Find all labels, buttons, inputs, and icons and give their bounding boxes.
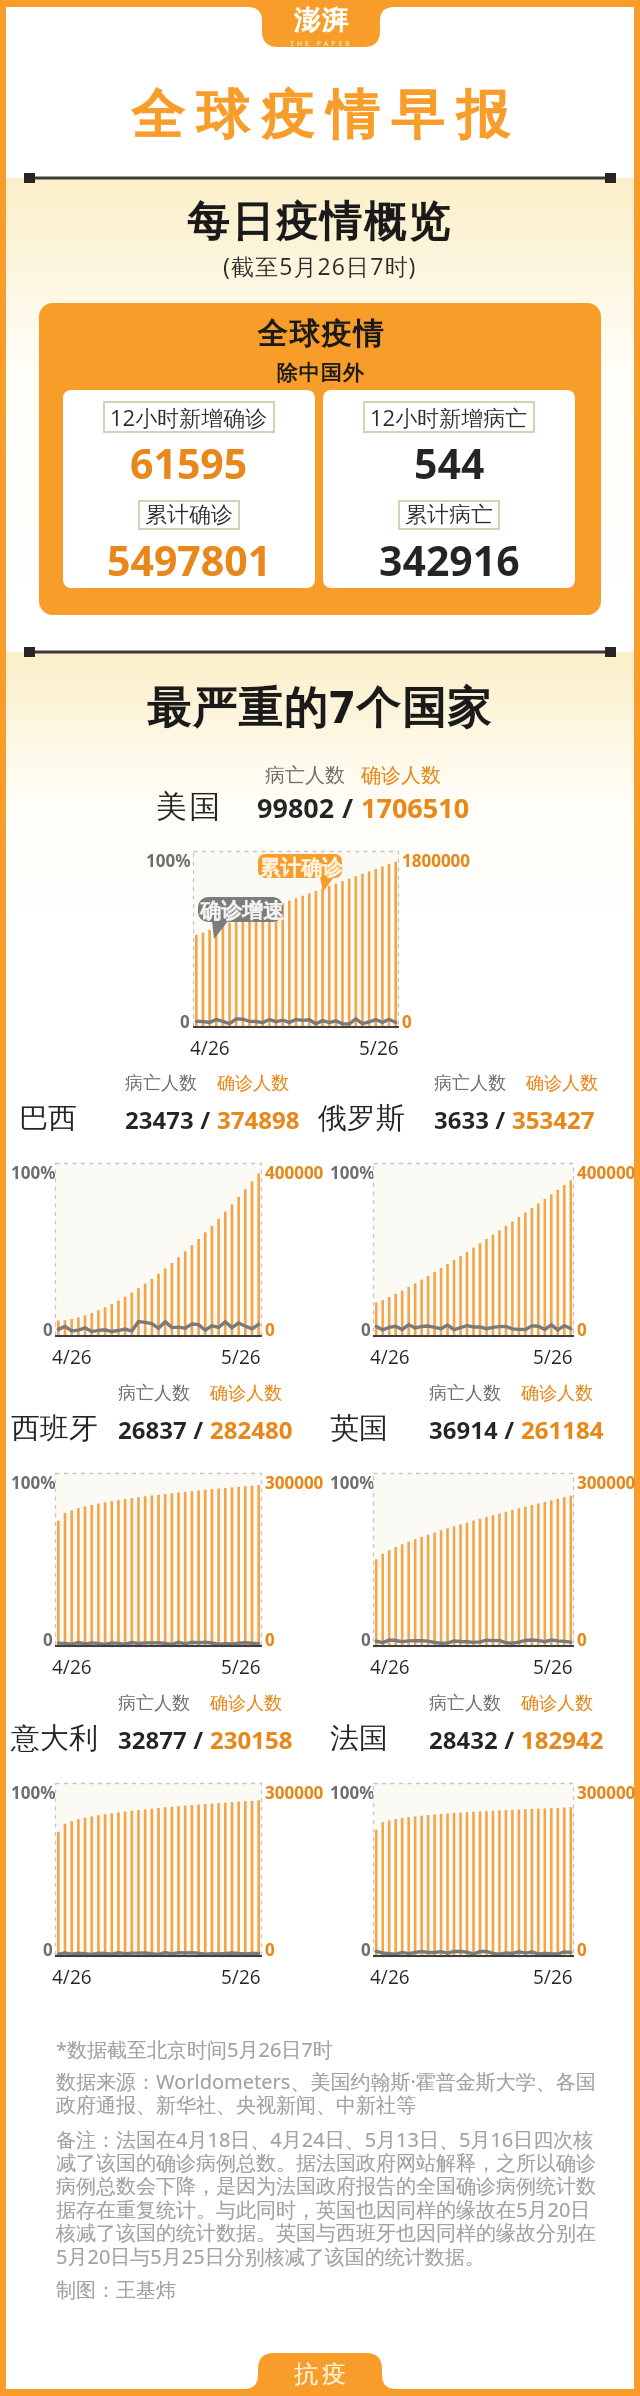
staticText: THE PAPER [290,39,353,49]
staticText: 1706510 [361,789,470,826]
staticText: 1800000 [402,849,471,872]
staticText: 374898 [217,1103,300,1136]
staticText: 100% [146,849,191,872]
staticText: 12小时新增确诊 [110,402,268,432]
button[interactable]: 12小时新增病亡 [323,390,575,588]
staticText: 病亡人数 [429,1692,501,1715]
staticText: / [498,1413,521,1446]
staticText: 4/26 [370,1344,410,1370]
staticText: 制图：王基炜 [56,2278,176,2303]
staticText: 俄罗斯 [318,1100,405,1137]
staticText: 意大利 [11,1720,98,1757]
staticText: 法国 [330,1720,388,1757]
staticText: 300000 [265,1781,324,1804]
staticText: 5/26 [533,1964,573,1990]
staticText: 300000 [265,1471,324,1494]
staticText: 全球疫情早报 [125,82,515,144]
staticText: 3633 [434,1103,489,1136]
staticText: 99802 [257,789,335,826]
staticText: 5497801 [107,532,272,588]
staticText: 0 [361,1938,371,1961]
staticText: 0 [361,1628,371,1651]
staticText: 4/26 [370,1654,410,1680]
staticText: 确诊增速 [200,898,284,924]
staticText: 美国 [155,787,221,826]
staticText: 282480 [210,1413,293,1446]
staticText: 400000 [265,1161,324,1184]
staticText: 100% [11,1781,56,1804]
button[interactable]: 12小时新增确诊 [63,390,315,588]
staticText: 巴西 [19,1100,77,1137]
staticText: 确诊人数 [217,1072,289,1095]
staticText: 0 [361,1318,371,1341]
staticText: 病亡人数 [429,1382,501,1405]
staticText: 确诊人数 [361,763,441,788]
staticText: 5/26 [533,1344,573,1370]
button[interactable]: 抗疫 [0,2346,640,2396]
staticText: 5/26 [533,1654,573,1680]
staticText: 5/26 [359,1035,399,1061]
staticText: 0 [265,1938,275,1961]
staticText: 每日疫情概览 [187,196,453,249]
staticText: 36914 [429,1413,498,1446]
staticText: 4/26 [52,1344,92,1370]
staticText: 353427 [512,1103,595,1136]
staticText: 全球疫情 [256,315,384,353]
staticText: 数据来源：Worldometers、美国约翰斯·霍普金斯大学、各国政府通报、新华… [56,2068,596,2118]
staticText: 26837 [118,1413,187,1446]
staticText: 230158 [210,1723,293,1756]
staticText: 病亡人数 [118,1382,190,1405]
staticText: 0 [43,1318,53,1341]
staticText: 342916 [379,532,520,588]
staticText: 最严重的7个国家 [147,676,493,736]
staticText: 澎湃 [293,4,349,37]
button[interactable]: 全球疫情 [39,303,601,615]
staticText: 确诊人数 [521,1692,593,1715]
staticText: 100% [11,1161,56,1184]
button[interactable]: The Paper logo [0,0,640,50]
staticText: 除中国外 [276,360,364,386]
staticText: 0 [402,1010,412,1033]
staticText: 4/26 [370,1964,410,1990]
staticText: 4/26 [52,1654,92,1680]
staticText: 61595 [130,435,248,491]
staticText: *数据截至北京时间5月26日7时 [56,2036,333,2063]
staticText: 确诊人数 [526,1072,598,1095]
staticText: / [335,789,361,826]
staticText: 病亡人数 [118,1692,190,1715]
staticText: 32877 [118,1723,187,1756]
staticText: 累计病亡 [405,501,493,529]
staticText: (截至5月26日7时) [223,250,417,281]
staticText: 12小时新增病亡 [370,402,528,432]
staticText: 5/26 [221,1654,261,1680]
staticText: / [489,1103,512,1136]
staticText: 西班牙 [11,1410,98,1447]
staticText: 300000 [577,1471,636,1494]
staticText: 5/26 [221,1964,261,1990]
staticText: 100% [330,1781,375,1804]
staticText: 病亡人数 [125,1072,197,1095]
staticText: 病亡人数 [434,1072,506,1095]
staticText: 300000 [577,1781,636,1804]
staticText: 544 [414,435,485,491]
staticText: 0 [577,1938,587,1961]
staticText: 0 [577,1628,587,1651]
staticText: 100% [11,1471,56,1494]
staticText: / [187,1723,210,1756]
staticText: / [194,1103,217,1136]
staticText: 确诊人数 [210,1692,282,1715]
staticText: 4/26 [52,1964,92,1990]
staticText: 182942 [521,1723,604,1756]
staticText: 病亡人数 [265,763,345,788]
staticText: 28432 [429,1723,498,1756]
staticText: 100% [330,1471,375,1494]
staticText: 0 [265,1628,275,1651]
staticText: 累计确诊 [145,501,233,529]
staticText: 0 [43,1628,53,1651]
staticText: 4/26 [190,1035,230,1061]
staticText: 400000 [577,1161,636,1184]
staticText: 备注：法国在4月18日、4月24日、5月13日、5月16日四次核减了该国的确诊病… [56,2126,596,2270]
staticText: 5/26 [221,1344,261,1370]
staticText: 261184 [521,1413,604,1446]
staticText: 0 [577,1318,587,1341]
